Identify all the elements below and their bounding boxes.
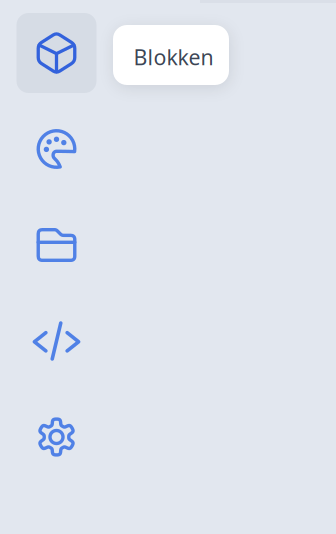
button[interactable]: Instellingen bbox=[0, 389, 113, 485]
button[interactable]: Bestanden bbox=[0, 197, 113, 293]
button[interactable]: Blokken bbox=[0, 5, 113, 101]
button[interactable]: Code bbox=[0, 293, 113, 389]
staticText: Blokken bbox=[133, 43, 213, 71]
button[interactable]: Stijlen bbox=[0, 101, 113, 197]
